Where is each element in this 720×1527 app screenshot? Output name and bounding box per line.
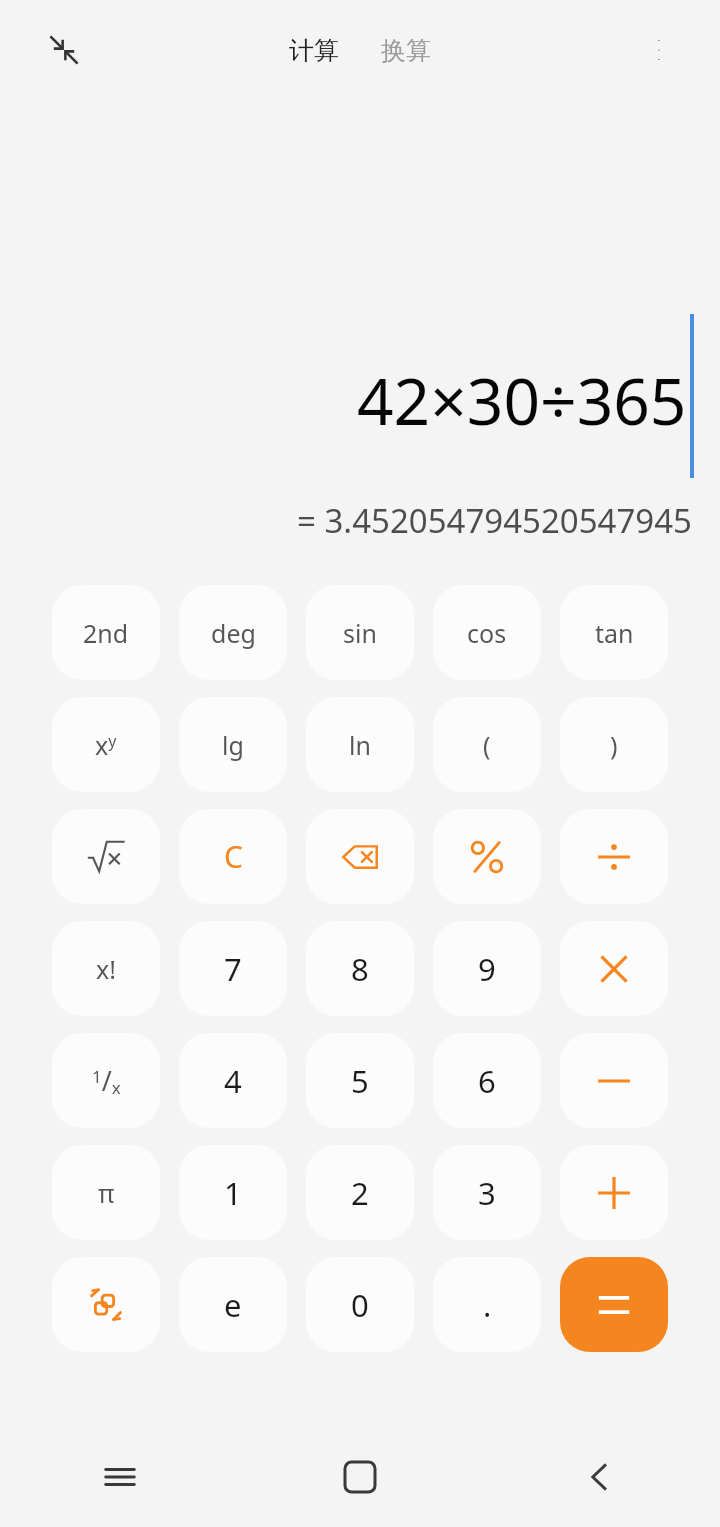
other: Percent	[468, 838, 506, 876]
staticText: 9	[478, 948, 496, 990]
button[interactable]: 9	[433, 921, 541, 1016]
staticText: 42×30÷365	[357, 357, 687, 444]
staticText: tan	[595, 616, 634, 650]
button[interactable]: Square root	[52, 809, 160, 904]
button[interactable]: tan	[560, 585, 668, 680]
button[interactable]: cos	[433, 585, 541, 680]
button[interactable]: 1/x	[52, 1033, 160, 1128]
other: Add	[595, 1174, 633, 1212]
button[interactable]: 8	[306, 921, 414, 1016]
button[interactable]: x!	[52, 921, 160, 1016]
staticText: 2	[351, 1172, 369, 1214]
button[interactable]: 5	[306, 1033, 414, 1128]
button[interactable]: 4	[179, 1033, 287, 1128]
button[interactable]: Add	[560, 1145, 668, 1240]
staticText: 0	[351, 1284, 369, 1326]
staticText: x!	[96, 952, 116, 986]
button[interactable]: Divide	[560, 809, 668, 904]
button[interactable]: 3	[433, 1145, 541, 1240]
staticText: 8	[351, 948, 369, 990]
button[interactable]: 计算	[279, 29, 349, 72]
other: Subtract	[595, 1062, 633, 1100]
button[interactable]: )	[560, 697, 668, 792]
other: Backspace	[341, 838, 379, 876]
button[interactable]: 0	[306, 1257, 414, 1352]
staticText: 1/x	[92, 1062, 121, 1099]
button[interactable]: e	[179, 1257, 287, 1352]
button[interactable]: Subtract	[560, 1033, 668, 1128]
button[interactable]: Unit conversion	[52, 1257, 160, 1352]
staticText: xy	[95, 728, 117, 762]
other: Multiply	[595, 950, 633, 988]
staticText: e	[224, 1284, 242, 1326]
button[interactable]: 2nd	[52, 585, 160, 680]
button[interactable]: Backspace	[306, 809, 414, 904]
button[interactable]: C	[179, 809, 287, 904]
button[interactable]: Percent	[433, 809, 541, 904]
staticText: 7	[224, 948, 242, 990]
staticText: 5	[351, 1060, 369, 1102]
button[interactable]: 2	[306, 1145, 414, 1240]
staticText: 4	[224, 1060, 242, 1102]
staticText: = 3.452054794520547945	[297, 498, 692, 543]
button[interactable]: More options	[636, 27, 682, 73]
staticText: 3	[478, 1172, 496, 1214]
button[interactable]: 换算	[371, 29, 441, 72]
staticText: 1	[224, 1172, 242, 1214]
button[interactable]: Collapse	[40, 26, 88, 74]
button[interactable]: Recent apps	[0, 1427, 240, 1527]
staticText: ln	[349, 728, 371, 762]
staticText: 换算	[381, 35, 431, 66]
other: Unit conversion	[87, 1286, 125, 1324]
button[interactable]: xy	[52, 697, 160, 792]
staticText: π	[98, 1176, 115, 1210]
button[interactable]: 6	[433, 1033, 541, 1128]
button[interactable]: ln	[306, 697, 414, 792]
button[interactable]: sin	[306, 585, 414, 680]
staticText: cos	[467, 616, 507, 650]
staticText: 计算	[289, 35, 339, 66]
other: Square root	[87, 838, 125, 876]
button[interactable]: Back	[480, 1427, 720, 1527]
button[interactable]: 7	[179, 921, 287, 1016]
staticText: sin	[343, 616, 377, 650]
button[interactable]: Multiply	[560, 921, 668, 1016]
staticText: C	[224, 836, 243, 877]
staticText: 6	[478, 1060, 496, 1102]
button[interactable]: .	[433, 1257, 541, 1352]
button[interactable]: Equals	[560, 1257, 668, 1352]
other: Divide	[595, 838, 633, 876]
staticText: .	[483, 1284, 492, 1326]
button[interactable]: lg	[179, 697, 287, 792]
button[interactable]: deg	[179, 585, 287, 680]
button[interactable]: π	[52, 1145, 160, 1240]
button[interactable]: (	[433, 697, 541, 792]
staticText: )	[610, 728, 618, 762]
button[interactable]: Home	[240, 1427, 480, 1527]
staticText: (	[483, 728, 491, 762]
button[interactable]: 1	[179, 1145, 287, 1240]
staticText: lg	[222, 728, 244, 762]
staticText: 2nd	[83, 616, 129, 650]
other: Equals	[595, 1286, 633, 1324]
staticText: deg	[211, 616, 256, 650]
